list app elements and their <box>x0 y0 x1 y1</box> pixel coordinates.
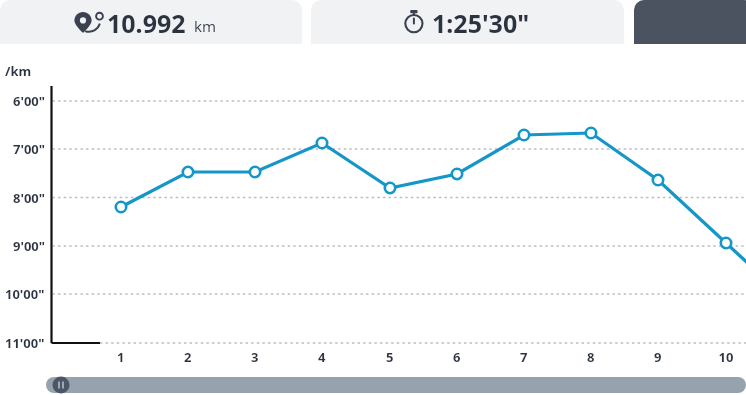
button[interactable] <box>0 0 302 44</box>
button[interactable] <box>311 0 624 44</box>
button[interactable]: Scroll chart <box>46 377 746 393</box>
button[interactable]: Pace tab <box>634 0 746 44</box>
